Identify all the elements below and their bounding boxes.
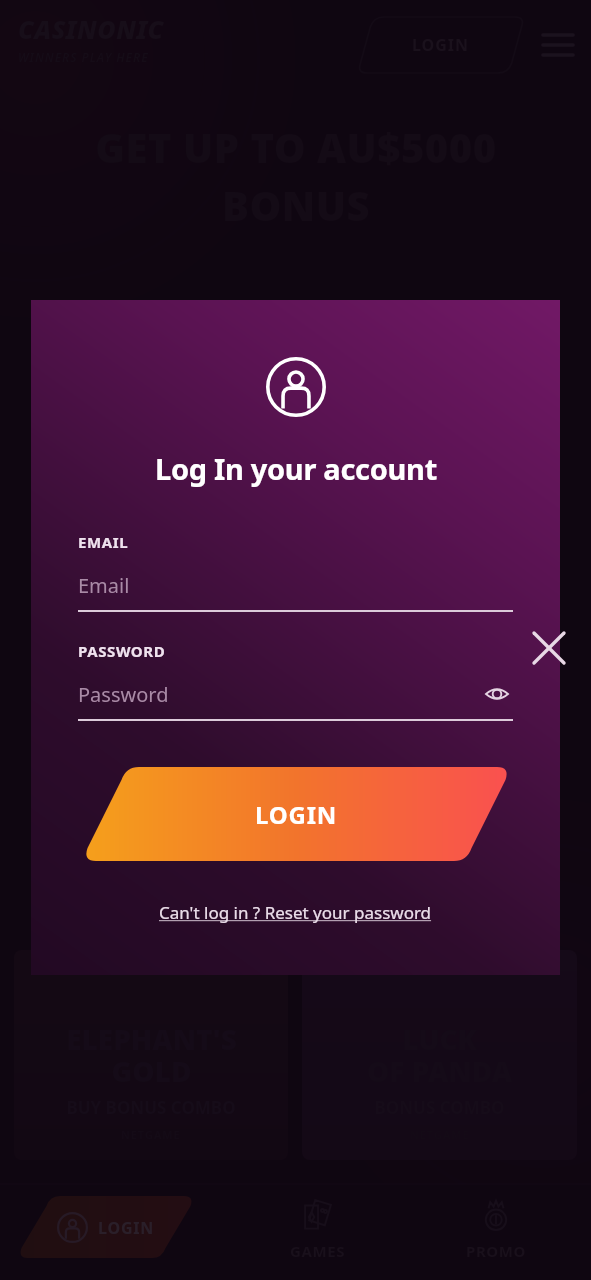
button[interactable]: Email (78, 569, 513, 612)
staticText: PROMO (466, 1241, 527, 1261)
button[interactable]: Can't log in ? Reset your password (31, 890, 560, 934)
button[interactable]: LUCK OF PANDA (302, 950, 577, 1160)
button[interactable]: Close (518, 617, 580, 679)
staticText: Password (78, 681, 169, 708)
staticText: CASINONIC (18, 12, 164, 46)
staticText: LOGIN (255, 798, 338, 831)
staticText: Log In your account (155, 449, 437, 488)
staticText: EMAIL (78, 532, 129, 552)
button[interactable]: LOGIN (18, 1196, 194, 1258)
button[interactable]: ELEPHANT'S GOLD (14, 950, 288, 1160)
staticText: Email (78, 572, 130, 599)
staticText: LOGIN (98, 1217, 155, 1239)
button[interactable]: Password (78, 678, 513, 721)
button[interactable]: LOGIN (83, 767, 510, 861)
staticText: PASSWORD (78, 641, 166, 661)
staticText: GAMES (290, 1241, 346, 1261)
button[interactable]: Show password (481, 678, 513, 710)
staticText: Can't log in ? Reset your password (159, 901, 432, 924)
staticText: LOGIN (412, 34, 470, 56)
button[interactable]: Menu (538, 25, 578, 65)
